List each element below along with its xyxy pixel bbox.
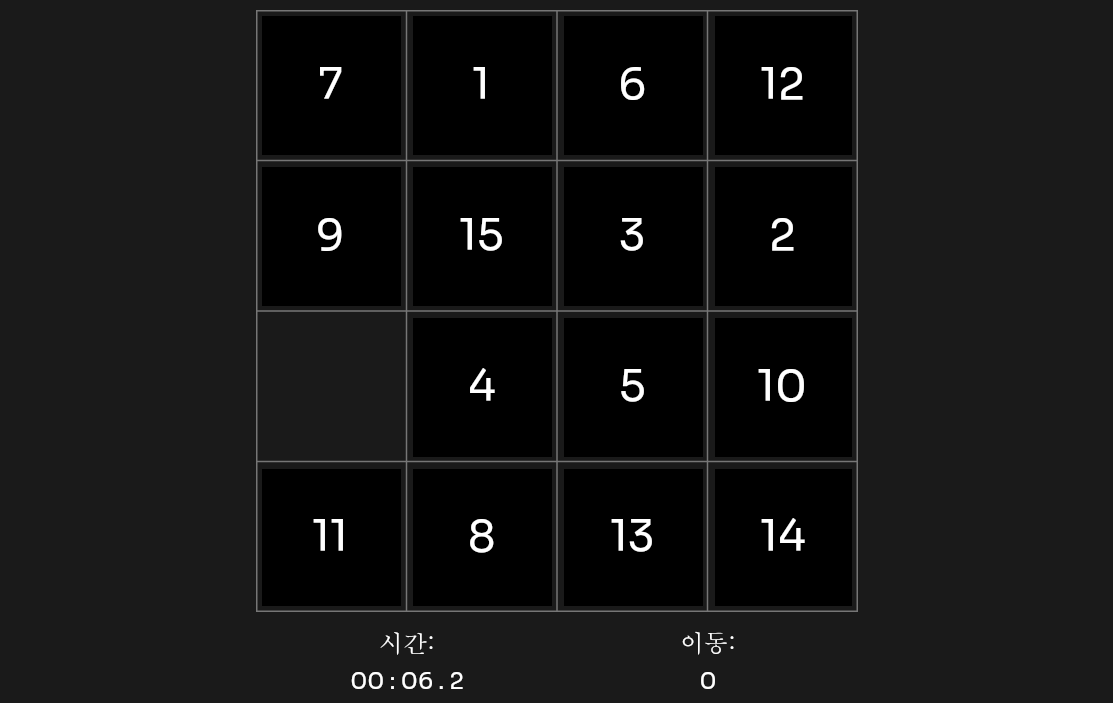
staticText: 12	[760, 57, 805, 111]
staticText: 0	[699, 667, 717, 696]
staticText: 4	[468, 359, 496, 413]
staticText: 10	[757, 359, 808, 413]
staticText: 8	[468, 509, 496, 563]
staticText: 13	[610, 509, 655, 563]
button[interactable]: 14	[715, 469, 852, 606]
button[interactable]: 2	[715, 167, 852, 306]
button[interactable]: 1	[413, 16, 552, 155]
button[interactable]: 13	[564, 469, 703, 606]
button[interactable]: 4	[413, 318, 552, 457]
button[interactable]: 15	[413, 167, 552, 306]
staticText: 시간:	[379, 625, 435, 659]
staticText: 이동:	[680, 625, 736, 659]
staticText: 5	[619, 359, 646, 413]
button[interactable]: 7	[262, 16, 401, 155]
staticText: 00 : 06 . 2	[350, 667, 464, 696]
staticText: 9	[316, 208, 345, 262]
staticText: 6	[618, 57, 647, 111]
button[interactable]: 6	[564, 16, 703, 155]
button[interactable]: 10	[715, 318, 852, 457]
button[interactable]: 5	[564, 318, 703, 457]
button[interactable]: 9	[262, 167, 401, 306]
staticText: 14	[760, 509, 806, 563]
staticText: 1	[472, 57, 491, 111]
button[interactable]: 3	[564, 167, 703, 306]
staticText: 2	[769, 208, 796, 262]
button[interactable]: 8	[413, 469, 552, 606]
button[interactable]: 12	[715, 16, 852, 155]
staticText: 7	[318, 57, 343, 111]
button[interactable]: 11	[262, 469, 401, 606]
staticText: 11	[312, 509, 349, 563]
staticText: 15	[459, 208, 504, 262]
staticText: 3	[619, 208, 646, 262]
